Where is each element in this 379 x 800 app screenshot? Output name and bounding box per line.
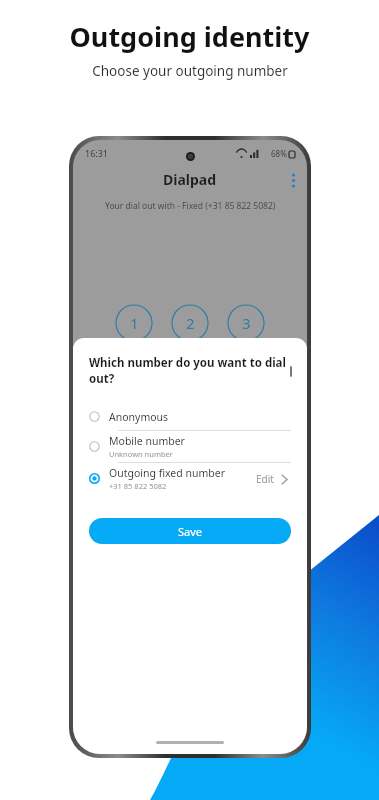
staticText: 3 [242, 313, 251, 333]
staticText: Which number do you want to dial out? [89, 355, 291, 387]
staticText: Mobile number [109, 434, 185, 448]
staticText: Dialpad [163, 170, 217, 189]
other: More options [292, 173, 295, 186]
staticText: +31 85 822 5082 [109, 481, 167, 491]
staticText: Anonymous [109, 410, 169, 424]
staticText: 68% [271, 148, 287, 159]
staticText: Your dial out with - Fixed (+31 85 822 5… [105, 200, 276, 212]
staticText: Edit [256, 472, 274, 486]
staticText: Choose your outgoing number [92, 62, 288, 80]
staticText: 16:31 [85, 147, 109, 159]
button[interactable]: Mobile number [89, 431, 291, 462]
staticText: Unknown number [109, 449, 173, 459]
button[interactable]: Outgoing fixed number [89, 463, 291, 494]
staticText: Save [178, 524, 203, 539]
button[interactable]: Save [89, 518, 291, 544]
button[interactable]: Edit [252, 472, 291, 486]
staticText: 1 [130, 313, 139, 333]
staticText: Outgoing identity [69, 18, 310, 55]
staticText: 2 [186, 313, 195, 333]
button[interactable]: Anonymous [89, 403, 291, 430]
staticText: Outgoing fixed number [109, 466, 225, 480]
